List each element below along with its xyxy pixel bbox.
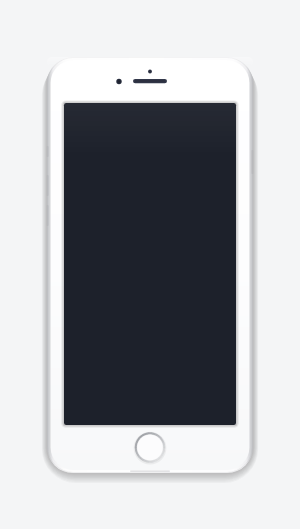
button[interactable]: Volume down (44, 203, 50, 226)
button[interactable]: Power (250, 148, 256, 176)
button[interactable]: Volume up (44, 173, 50, 196)
button[interactable]: Home button (135, 432, 165, 463)
